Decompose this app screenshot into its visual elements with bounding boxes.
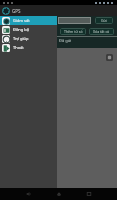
button[interactable]: Gửi: [95, 17, 113, 24]
staticText: Giám sát: [13, 18, 30, 23]
button[interactable]: Giám sát: [0, 16, 57, 25]
staticText: Đồng bộ: [13, 27, 30, 32]
staticText: Xóa tất cả: [93, 29, 110, 34]
button[interactable]: Thoát: [0, 43, 57, 52]
button[interactable]: [58, 17, 91, 24]
staticText: Đã gửi: [59, 38, 72, 43]
staticText: Thoát: [13, 45, 24, 50]
staticText: GPS: [12, 8, 21, 14]
button[interactable]: Đồng bộ: [0, 25, 57, 34]
button[interactable]: Trợ giúp: [0, 34, 57, 43]
button[interactable]: Back: [20, 188, 36, 200]
button[interactable]: Thêm từ sổ: [60, 28, 86, 35]
button[interactable]: Xóa tất cả: [89, 28, 114, 35]
button[interactable]: Recent apps: [81, 188, 97, 200]
staticText: Thêm từ sổ: [64, 29, 83, 34]
staticText: Gửi: [101, 18, 107, 23]
button[interactable]: Home: [51, 188, 67, 200]
staticText: Trợ giúp: [13, 36, 29, 41]
button[interactable]: Select all: [106, 54, 113, 61]
